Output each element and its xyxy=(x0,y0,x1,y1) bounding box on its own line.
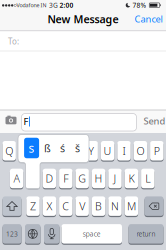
button[interactable]: M xyxy=(125,196,138,216)
staticText: Send xyxy=(143,115,165,127)
staticText: F xyxy=(63,171,68,186)
staticText: O xyxy=(136,144,144,158)
staticText: New Message xyxy=(47,12,118,26)
button[interactable]: T xyxy=(68,140,81,161)
button[interactable]: Cancel xyxy=(131,12,165,26)
staticText: U xyxy=(104,144,112,158)
button[interactable]: Q xyxy=(2,140,16,161)
button[interactable]: L xyxy=(141,168,154,189)
button[interactable]: ß xyxy=(40,138,54,158)
button[interactable]: Shift xyxy=(2,196,21,216)
button[interactable]: H xyxy=(92,168,105,189)
button[interactable]: U xyxy=(101,140,114,161)
staticText: B xyxy=(95,199,102,213)
button[interactable]: P xyxy=(150,140,163,161)
staticText: Vodafone IN xyxy=(16,2,46,9)
button[interactable]: E xyxy=(35,140,49,161)
staticText: H xyxy=(95,171,103,186)
button[interactable]: 123 xyxy=(2,224,21,244)
button[interactable]: Next Keyboard xyxy=(25,224,40,244)
staticText: D xyxy=(45,171,53,186)
staticText: W xyxy=(21,144,31,158)
staticText: P xyxy=(154,144,160,158)
staticText: Z xyxy=(30,199,36,213)
button[interactable]: s xyxy=(24,138,39,158)
button[interactable]: F xyxy=(59,168,72,189)
staticText: L xyxy=(145,171,150,186)
button[interactable]: K xyxy=(125,168,138,189)
staticText: Q xyxy=(5,144,13,158)
button[interactable]: Delete xyxy=(144,196,163,216)
button[interactable]: C xyxy=(59,196,72,216)
button[interactable]: R xyxy=(52,140,65,161)
staticText: K xyxy=(128,171,134,186)
staticText: 3G xyxy=(49,1,58,10)
button[interactable]: Z xyxy=(26,196,40,216)
button[interactable]: Attach Photo xyxy=(3,113,19,127)
staticText: N xyxy=(111,199,119,213)
staticText: I xyxy=(122,144,125,158)
staticText: V xyxy=(79,199,85,213)
staticText: T xyxy=(72,144,78,158)
button[interactable]: D xyxy=(43,168,56,189)
staticText: return xyxy=(136,229,155,238)
staticText: 2:00 xyxy=(59,1,73,10)
button[interactable]: To: xyxy=(0,31,166,51)
button[interactable]: space xyxy=(61,224,122,244)
staticText: š xyxy=(75,141,80,155)
button[interactable]: W xyxy=(19,140,32,161)
button[interactable]: B xyxy=(92,196,105,216)
button[interactable]: Y xyxy=(84,140,98,161)
staticText: Cancel xyxy=(134,13,162,25)
button[interactable]: X xyxy=(43,196,56,216)
button[interactable]: A xyxy=(10,168,23,189)
staticText: ś xyxy=(60,141,65,155)
staticText: X xyxy=(46,199,52,213)
staticText: M xyxy=(127,199,136,213)
staticText: s xyxy=(29,140,35,156)
staticText: G xyxy=(78,171,86,186)
button[interactable]: J xyxy=(108,168,122,189)
staticText: A xyxy=(14,171,20,186)
button[interactable]: I xyxy=(117,140,131,161)
staticText: space xyxy=(83,229,101,238)
button[interactable]: V xyxy=(75,196,89,216)
staticText: 123 xyxy=(6,229,18,238)
button[interactable]: Dictate xyxy=(44,224,59,244)
staticText: 78% xyxy=(132,1,146,10)
staticText: F xyxy=(23,115,28,128)
staticText: ß xyxy=(44,141,51,155)
button[interactable]: S xyxy=(26,168,40,189)
button[interactable]: ś xyxy=(55,138,69,158)
staticText: R xyxy=(55,144,61,158)
button[interactable]: return xyxy=(128,224,163,244)
staticText: Y xyxy=(88,144,94,158)
button[interactable]: O xyxy=(134,140,147,161)
button[interactable]: Send xyxy=(141,114,166,128)
button[interactable]: š xyxy=(70,138,84,158)
button[interactable]: G xyxy=(75,168,89,189)
staticText: C xyxy=(62,199,69,213)
staticText: J xyxy=(113,171,116,186)
staticText: To: xyxy=(8,36,19,47)
button[interactable]: N xyxy=(108,196,122,216)
staticText: E xyxy=(39,144,45,158)
